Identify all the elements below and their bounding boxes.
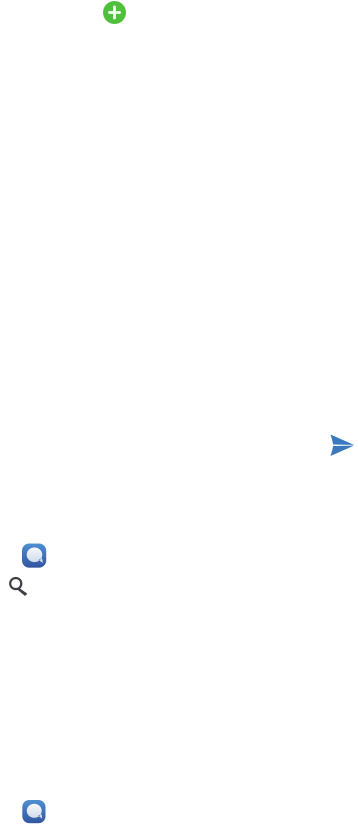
button[interactable]: Search bbox=[9, 577, 358, 596]
button[interactable]: Messages bbox=[22, 800, 45, 823]
button[interactable]: Send bbox=[330, 434, 354, 456]
button[interactable]: New Message bbox=[103, 1, 255, 24]
button[interactable]: Conversation bbox=[22, 543, 358, 568]
